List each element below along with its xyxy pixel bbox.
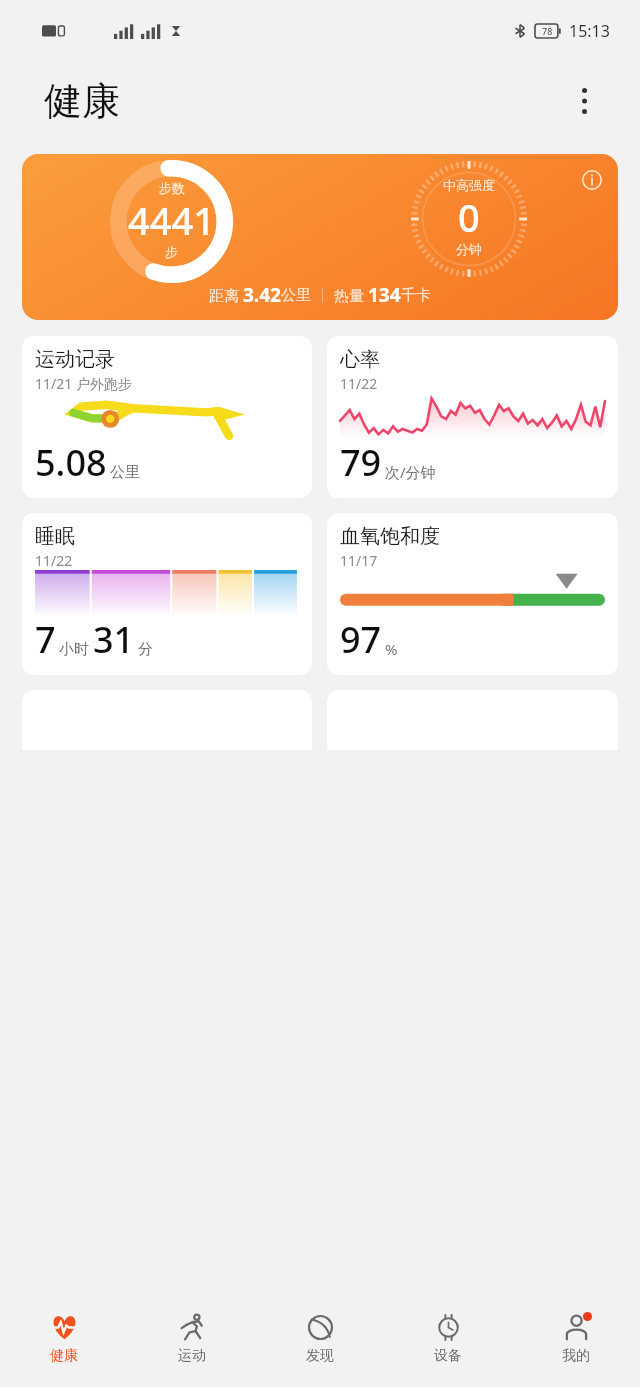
staticText: 公里 bbox=[281, 286, 311, 305]
staticText: 3.42 bbox=[243, 282, 281, 308]
staticText: 热量 bbox=[334, 285, 368, 305]
staticText: 中高强度 bbox=[443, 177, 495, 193]
staticText: 11/17 bbox=[340, 551, 378, 570]
staticText: 7 bbox=[35, 615, 56, 664]
staticText: 分钟 bbox=[456, 241, 482, 257]
staticText: 15:13 bbox=[569, 20, 610, 42]
button[interactable]: 运动 bbox=[128, 1290, 256, 1387]
button[interactable]: Info bbox=[22, 154, 618, 320]
staticText: 运动记录 bbox=[35, 347, 115, 372]
staticText: 睡眠 bbox=[35, 524, 75, 549]
staticText: 31 bbox=[93, 615, 135, 664]
staticText: % bbox=[385, 639, 398, 659]
staticText: 距离 bbox=[209, 285, 243, 305]
staticText: 0 bbox=[458, 191, 480, 243]
staticText: 次/分钟 bbox=[385, 462, 436, 482]
staticText: 134 bbox=[368, 282, 401, 308]
staticText: 步 bbox=[165, 244, 178, 260]
button[interactable]: More options bbox=[562, 79, 606, 123]
staticText: 11/22 bbox=[35, 551, 73, 570]
staticText: 11/22 bbox=[340, 374, 378, 393]
button[interactable]: 心率 bbox=[327, 336, 618, 498]
button[interactable]: 睡眠 bbox=[22, 513, 312, 675]
staticText: 79 bbox=[340, 438, 382, 487]
staticText: 5.08 bbox=[35, 438, 107, 487]
staticText: 小时 bbox=[59, 640, 89, 659]
staticText: 健康 bbox=[50, 1347, 78, 1365]
staticText: 4441 bbox=[128, 194, 215, 246]
staticText: 78 bbox=[542, 25, 553, 37]
staticText: 公里 bbox=[110, 463, 140, 482]
staticText: 血氧饱和度 bbox=[340, 524, 440, 549]
button[interactable]: 设备 bbox=[384, 1290, 512, 1387]
button[interactable]: 发现 bbox=[256, 1290, 384, 1387]
button[interactable]: 血氧饱和度 bbox=[327, 513, 618, 675]
staticText: 步数 bbox=[159, 180, 185, 196]
staticText: 设备 bbox=[434, 1347, 462, 1365]
staticText: 97 bbox=[340, 615, 382, 664]
button[interactable]: 运动记录 bbox=[22, 336, 312, 498]
staticText: 我的 bbox=[562, 1347, 590, 1365]
button[interactable]: Info bbox=[572, 160, 612, 200]
staticText: 健康 bbox=[44, 77, 120, 125]
staticText: 发现 bbox=[306, 1347, 334, 1365]
staticText: 11/21 户外跑步 bbox=[35, 374, 132, 393]
staticText: 运动 bbox=[178, 1347, 206, 1365]
staticText: 千卡 bbox=[401, 286, 431, 305]
staticText: 分 bbox=[138, 640, 153, 659]
button[interactable]: 我的 bbox=[512, 1290, 640, 1387]
button[interactable]: 健康 bbox=[0, 1290, 128, 1387]
staticText: 心率 bbox=[340, 347, 380, 372]
